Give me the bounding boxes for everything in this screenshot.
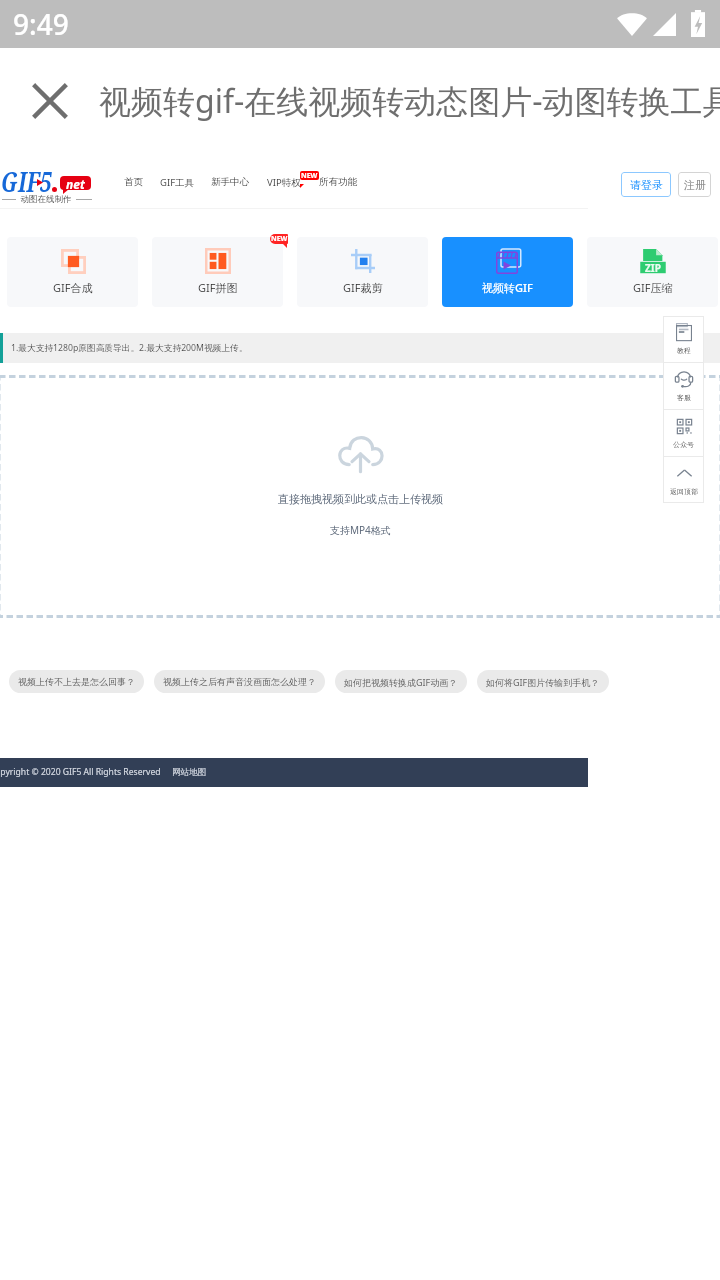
button[interactable]: 视频上传不上去是怎么回事？	[9, 670, 144, 693]
staticText: GIF工具	[160, 176, 195, 189]
staticText: NEW	[301, 171, 318, 180]
staticText: GIF合成	[53, 280, 93, 295]
staticText: 视频上传之后有声音没画面怎么处理？	[163, 676, 316, 687]
staticText: VIP特权	[267, 176, 301, 189]
staticText: 客服	[677, 393, 691, 402]
button[interactable]: 如何将GIF图片传输到手机？	[477, 670, 609, 693]
staticText: ZIP	[645, 261, 661, 275]
staticText: 公众号	[673, 440, 694, 449]
staticText: 9:49	[13, 5, 69, 43]
button[interactable]: 教程	[663, 316, 704, 362]
button[interactable]: GIF拼图	[152, 237, 283, 307]
staticText: 返回顶部	[670, 487, 698, 496]
button[interactable]: 视频上传之后有声音没画面怎么处理？	[154, 670, 325, 693]
button[interactable]: 所有功能	[319, 176, 357, 188]
button[interactable]: GIF工具	[160, 176, 195, 189]
staticText: GIF5	[1, 162, 52, 199]
button[interactable]: GIF合成	[7, 237, 138, 307]
staticText: 1.最大支持1280p原图高质导出。2.最大支持200M视频上传。	[11, 342, 248, 354]
staticText: 直接拖拽视频到此或点击上传视频	[278, 492, 443, 506]
staticText: 视频转GIF	[482, 280, 533, 295]
button[interactable]: ZIP	[587, 237, 718, 307]
button[interactable]: Close	[22, 73, 78, 129]
staticText: 请登录	[630, 178, 663, 192]
button[interactable]: 客服	[663, 363, 704, 409]
button[interactable]: 如何把视频转换成GIF动画？	[335, 670, 467, 693]
staticText: 首页	[124, 176, 143, 188]
staticText: GIF拼图	[198, 280, 238, 295]
staticText: 所有功能	[319, 176, 357, 188]
staticText: 如何将GIF图片传输到手机？	[486, 676, 600, 688]
staticText: 网站地图	[172, 767, 207, 778]
staticText: 视频上传不上去是怎么回事？	[18, 676, 135, 687]
staticText: 教程	[677, 346, 691, 355]
staticText: NEW	[271, 234, 288, 244]
staticText: GIF压缩	[633, 280, 673, 295]
staticText: net	[66, 176, 85, 190]
button[interactable]: 视频转GIF	[442, 237, 573, 307]
staticText: copyright © 2020 GIF5 All Rights Reserve…	[0, 766, 161, 778]
button[interactable]: 首页	[124, 176, 143, 188]
staticText: 支持MP4格式	[330, 523, 391, 537]
button[interactable]: 公众号	[663, 410, 704, 456]
staticText: 如何把视频转换成GIF动画？	[344, 676, 458, 688]
staticText: 新手中心	[211, 176, 249, 188]
staticText: GIF裁剪	[343, 280, 383, 295]
staticText: 动图在线制作	[16, 193, 76, 205]
button[interactable]: 直接拖拽视频到此或点击上传视频	[0, 375, 720, 618]
button[interactable]: VIP特权	[267, 176, 301, 189]
button[interactable]: 返回顶部	[663, 457, 704, 503]
button[interactable]: 请登录	[621, 172, 671, 197]
button[interactable]: 新手中心	[211, 176, 249, 188]
staticText: 注册	[684, 178, 706, 192]
button[interactable]: 注册	[678, 172, 711, 197]
staticText: 视频转gif-在线视频转动态图片-动图转换工具	[99, 79, 720, 123]
button[interactable]: GIF裁剪	[297, 237, 428, 307]
